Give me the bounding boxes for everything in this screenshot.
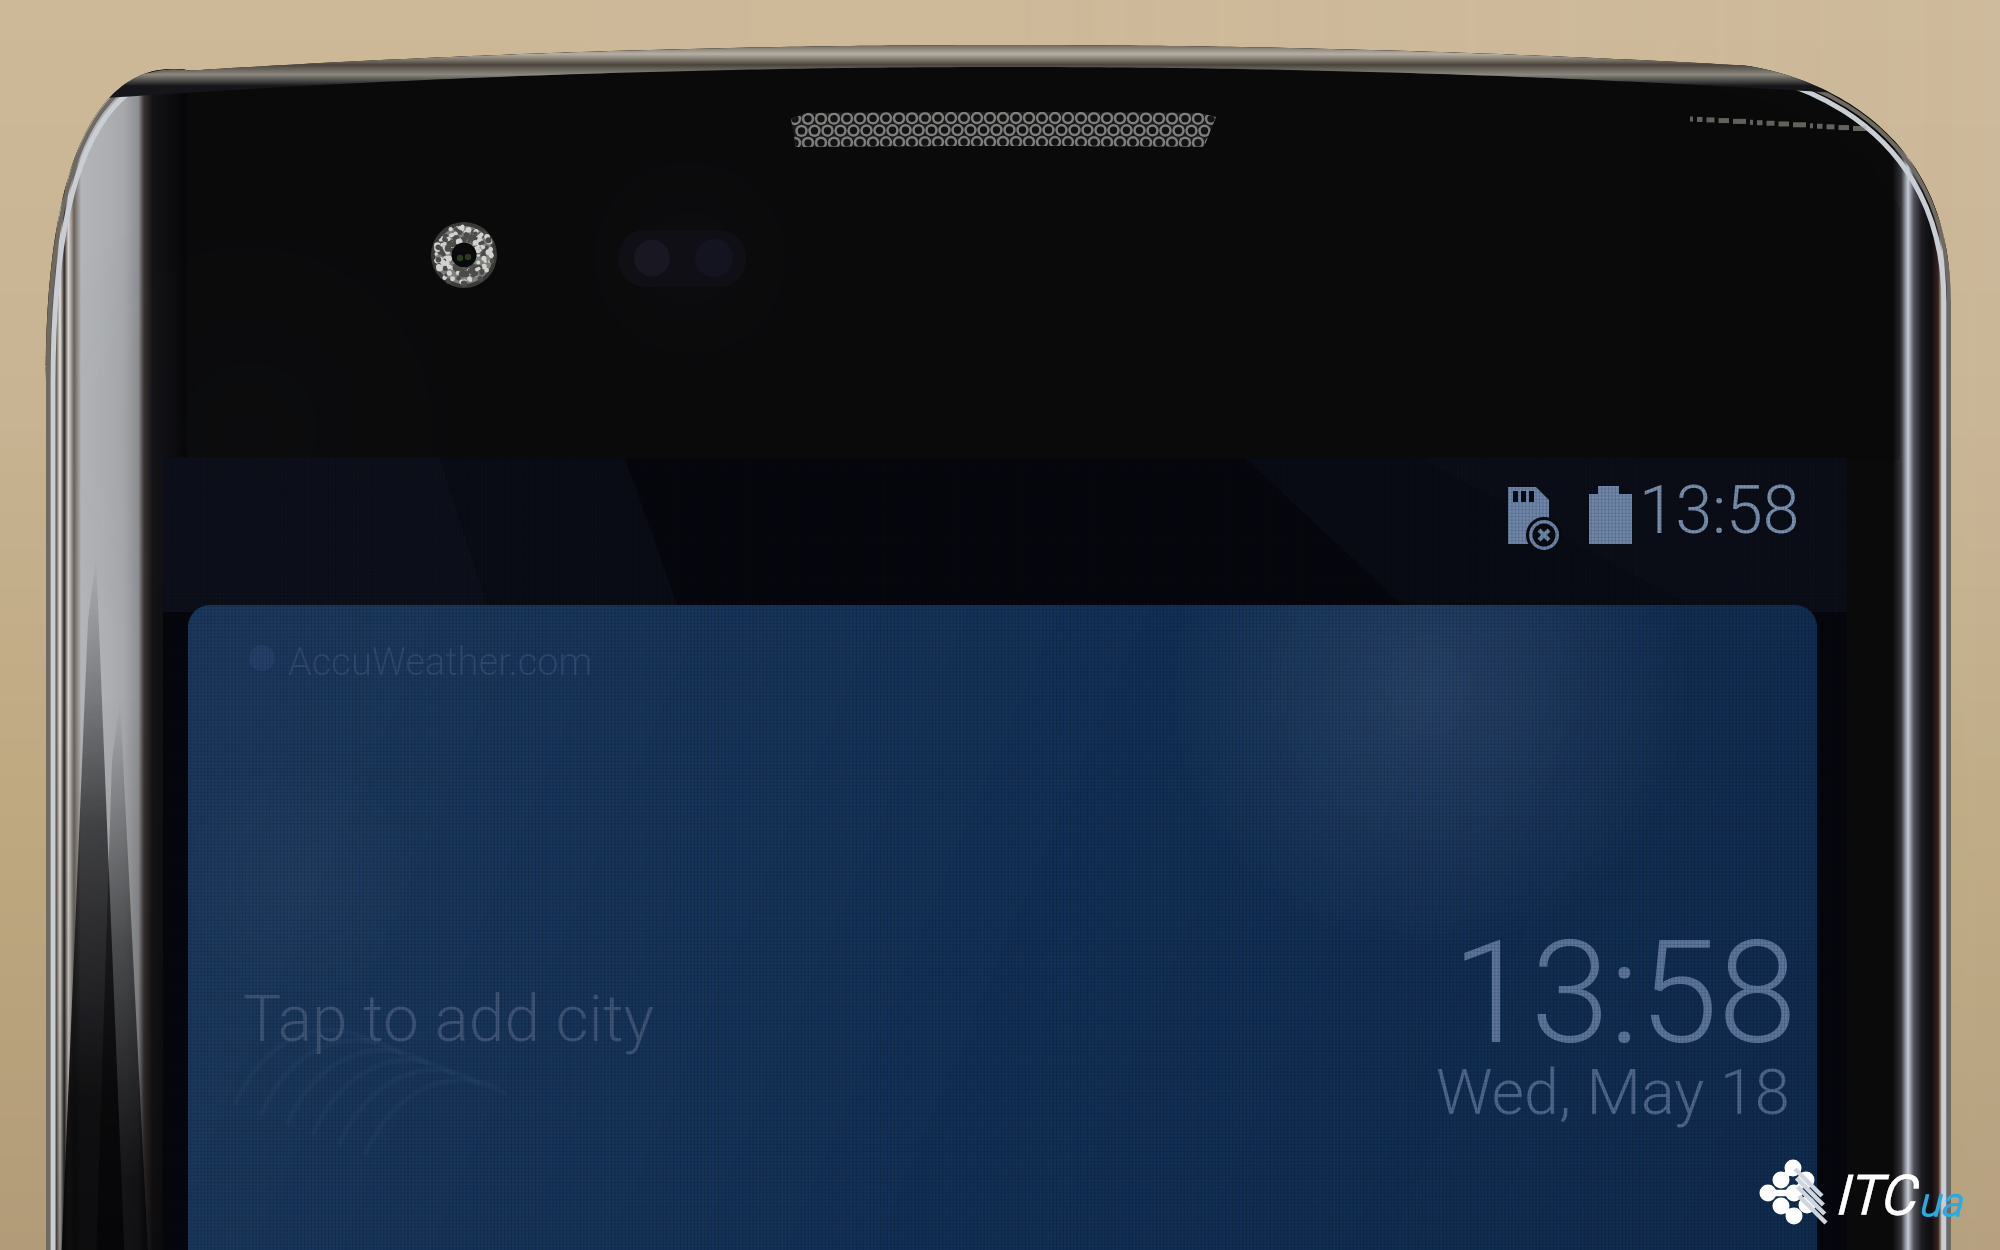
staticText: ITC — [1834, 1164, 1915, 1227]
button[interactable]: Tap to add city weather widget — [188, 605, 1817, 1250]
staticText: 13:58 — [1452, 910, 1797, 1076]
staticText: AccuWeather.com — [288, 640, 593, 685]
staticText: Wed, May 18 — [1436, 1056, 1790, 1130]
button[interactable]: Photo of a smartphone showing a weather … — [0, 0, 2000, 1250]
staticText: Tap to add city — [243, 982, 654, 1057]
staticText: 13:58 — [1639, 472, 1800, 549]
staticText: ua — [1918, 1179, 1962, 1226]
